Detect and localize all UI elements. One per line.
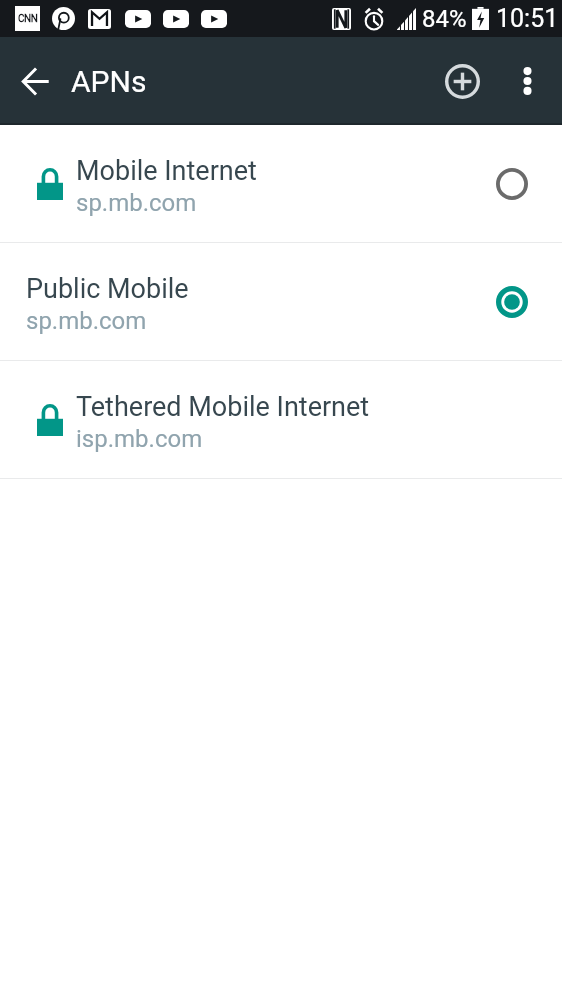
button[interactable]: Back	[7, 53, 63, 109]
staticText: sp.mb.com	[76, 189, 197, 217]
staticText: 84%	[422, 5, 467, 33]
staticText: APNs	[71, 64, 147, 99]
staticText: Mobile Internet	[76, 155, 257, 187]
button[interactable]: Select APN	[462, 125, 562, 242]
staticText: 10:51	[496, 4, 559, 33]
button[interactable]: Mobile Internet	[0, 125, 562, 242]
button[interactable]: Public Mobile	[0, 243, 562, 360]
staticText: Public Mobile	[26, 273, 189, 305]
button[interactable]: More options	[499, 37, 556, 125]
staticText: CNN	[18, 13, 38, 25]
staticText: isp.mb.com	[76, 425, 203, 453]
staticText: Tethered Mobile Internet	[76, 391, 370, 423]
button[interactable]: Selected APN	[462, 243, 562, 360]
button[interactable]: Add APN	[425, 37, 499, 125]
button[interactable]: Tethered Mobile Internet	[0, 361, 562, 478]
staticText: sp.mb.com	[26, 307, 147, 335]
